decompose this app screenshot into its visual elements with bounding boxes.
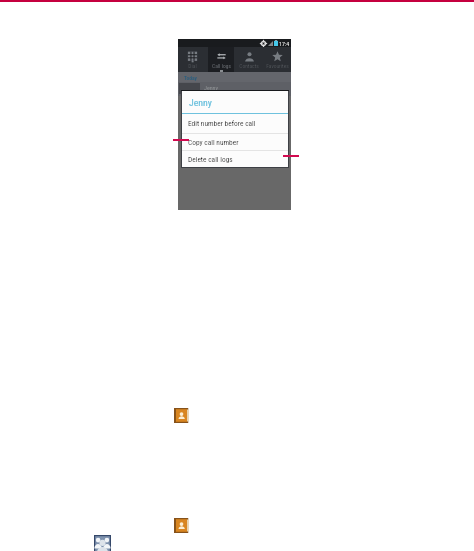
- other: Contacts: [244, 51, 255, 62]
- button[interactable]: Delete call logs: [182, 151, 288, 167]
- button[interactable]: Contacts: [235, 47, 263, 72]
- staticText: Jenny: [204, 84, 219, 91]
- button[interactable]: Call logs: [207, 47, 235, 72]
- staticText: Delete call logs: [188, 155, 233, 164]
- staticText: Dial: [188, 63, 197, 69]
- button[interactable]: Dial: [178, 47, 207, 72]
- button[interactable]: Edit number before call: [182, 114, 288, 133]
- staticText: Favourites: [266, 63, 289, 69]
- button[interactable]: Copy call number: [182, 134, 288, 150]
- staticText: Jenny: [189, 97, 212, 108]
- staticText: Edit number before call: [188, 119, 256, 128]
- staticText: Contacts: [239, 63, 259, 69]
- staticText: Today: [184, 75, 197, 81]
- staticText: Copy call number: [188, 138, 239, 147]
- button[interactable]: Favourites: [263, 47, 291, 72]
- other: Dial: [187, 51, 198, 62]
- other: Favourites: [272, 51, 283, 62]
- other: Call logs: [216, 51, 227, 62]
- staticText: 17:4: [279, 40, 290, 47]
- staticText: Call logs: [212, 63, 231, 69]
